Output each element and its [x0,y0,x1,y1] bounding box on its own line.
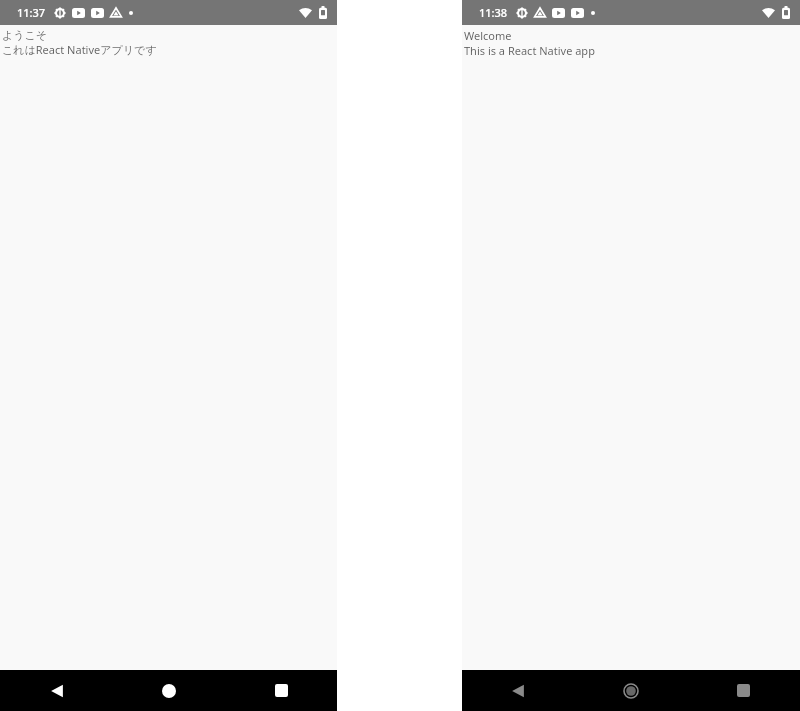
button[interactable]: Home [574,670,687,711]
button[interactable]: Back [462,670,574,711]
staticText: ようこそ [2,28,48,42]
staticText: これはReact Nativeアプリです [2,42,157,57]
button[interactable]: Recent apps [687,670,800,711]
staticText: 11:38 [479,5,508,20]
staticText: 11:37 [17,5,46,20]
staticText: This is a React Native app [464,43,595,58]
staticText: Welcome [464,28,512,43]
button[interactable]: Recent apps [225,670,337,711]
button[interactable]: Back [0,670,113,711]
button[interactable]: Home [113,670,225,711]
